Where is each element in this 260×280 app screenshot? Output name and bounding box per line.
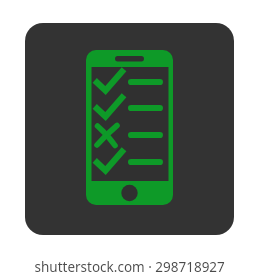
button[interactable]: Mobile checklist button [0,0,260,280]
